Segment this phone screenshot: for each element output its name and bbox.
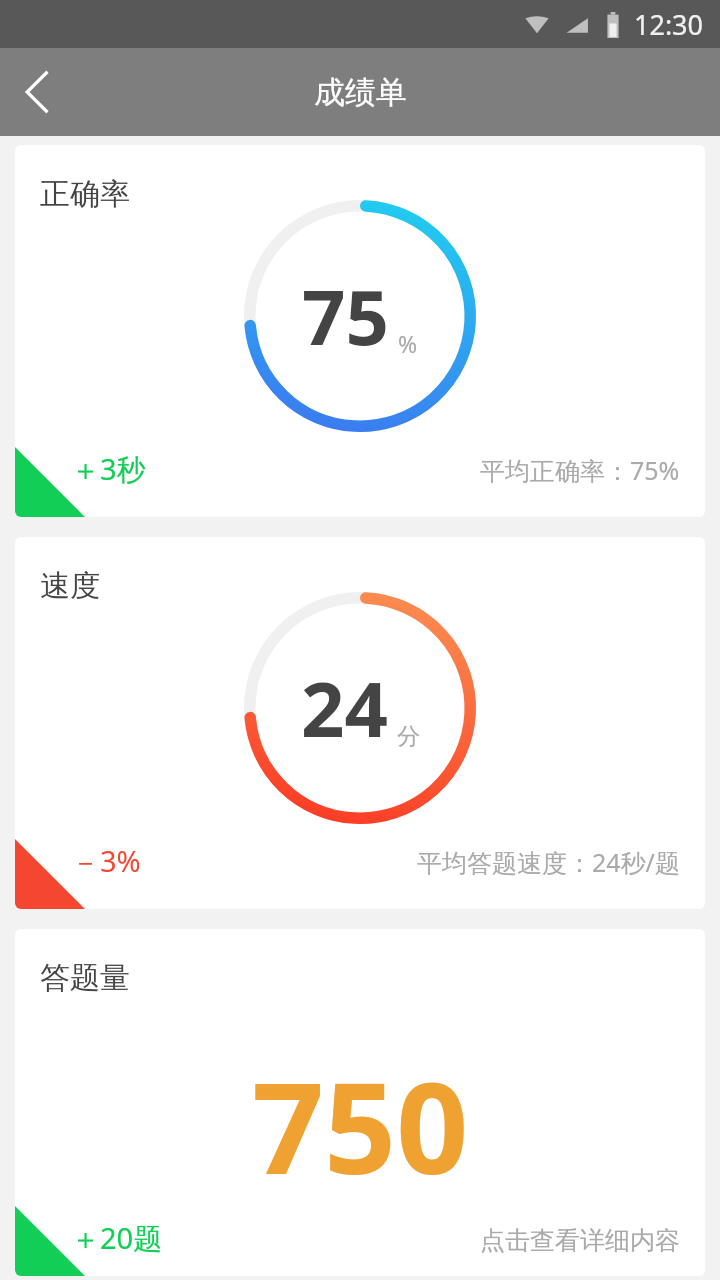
staticText: 12:30	[634, 6, 704, 43]
staticText: ＋3秒	[71, 449, 146, 489]
staticText: 750	[252, 1039, 469, 1211]
staticText: 成绩单	[314, 73, 407, 112]
staticText: 24	[301, 656, 388, 760]
staticText: ＋20题	[71, 1218, 163, 1258]
staticText: 答题量	[40, 959, 130, 997]
button[interactable]: 正确率	[15, 145, 705, 517]
staticText: 分	[397, 722, 420, 751]
staticText: 平均答题速度：24秒/题	[417, 845, 680, 879]
staticText: 点击查看详细内容	[480, 1225, 680, 1256]
staticText: 正确率	[40, 175, 130, 213]
button[interactable]: Back	[6, 60, 70, 124]
staticText: 平均正确率：75%	[480, 453, 680, 487]
staticText: －3%	[71, 841, 141, 881]
staticText: 75	[302, 264, 389, 368]
staticText: 速度	[40, 567, 100, 605]
staticText: %	[398, 328, 418, 359]
button[interactable]: 答题量	[15, 929, 705, 1276]
button[interactable]: 速度	[15, 537, 705, 909]
